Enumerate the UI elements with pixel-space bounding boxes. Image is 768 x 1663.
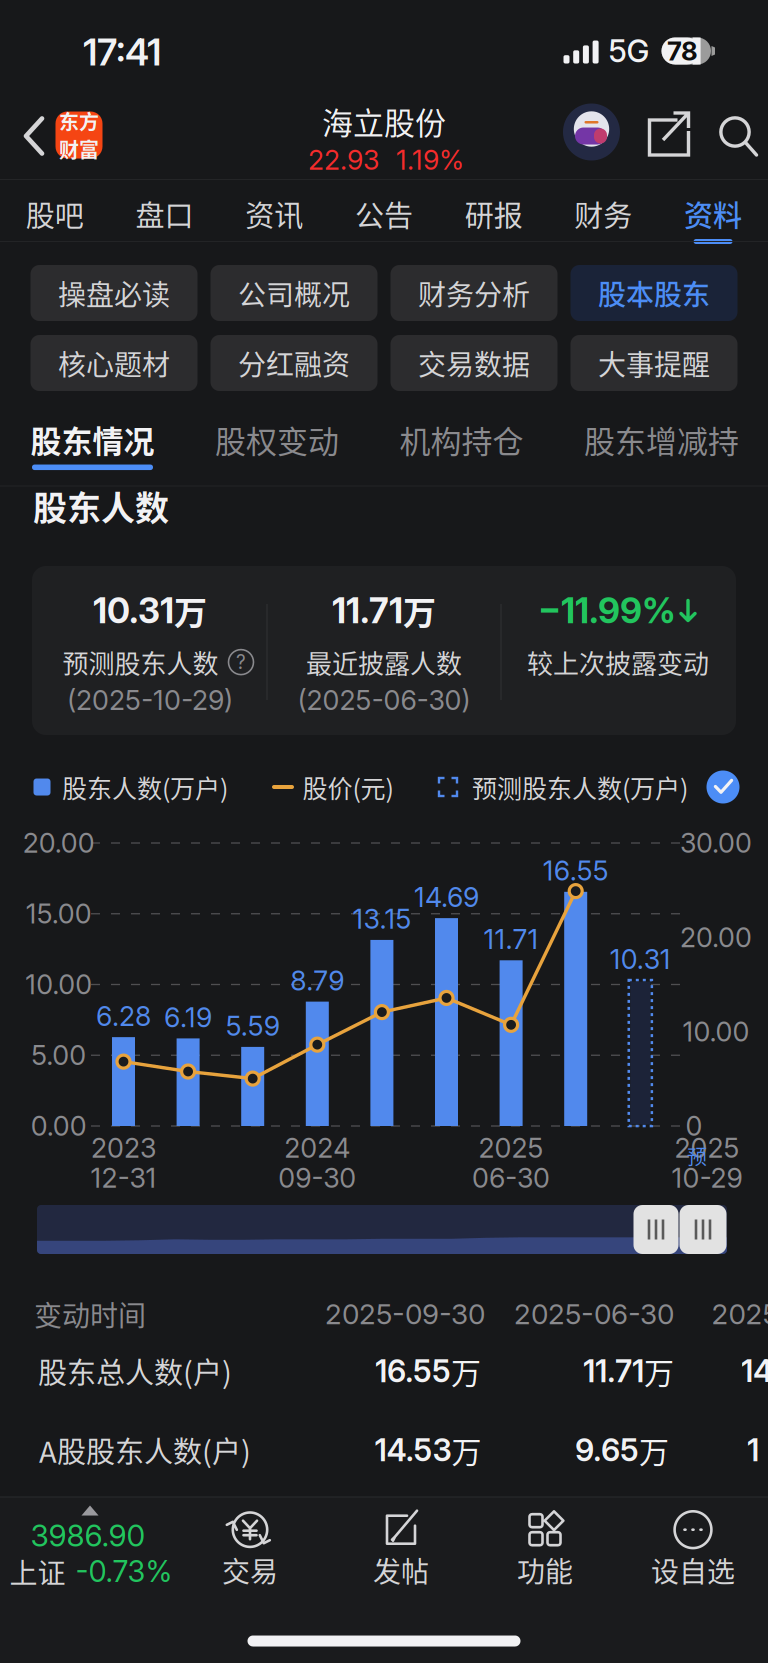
button[interactable]: 东方财富 [55, 111, 102, 158]
staticText: 万 [451, 1428, 481, 1472]
staticText: 6.28 [96, 1000, 151, 1032]
button[interactable]: 股东增减持 [561, 418, 761, 482]
button[interactable]: 操盘必读 [30, 265, 197, 321]
button[interactable]: 研报 [439, 180, 548, 242]
staticText: 14 [741, 1352, 768, 1390]
staticText: 2025-06-30 [514, 1297, 674, 1331]
staticText: 16.55 [543, 854, 609, 887]
staticText: 股价(元) [302, 769, 393, 805]
staticText: 1.19% [396, 144, 464, 176]
staticText: 11.71 [583, 1352, 644, 1390]
staticText: 10.00 [25, 968, 92, 1001]
staticText: 17:41 [83, 30, 161, 74]
button[interactable]: 机构持仓 [361, 418, 561, 482]
staticText: 10-29 [671, 1162, 742, 1194]
staticText: A股股东人数(户) [39, 1429, 251, 1471]
button[interactable]: 财务 [548, 180, 658, 242]
button[interactable]: 股权变动 [177, 418, 377, 482]
staticText: 16.55 [375, 1352, 451, 1390]
staticText: 交易 [222, 1550, 278, 1590]
staticText: 最近披露人数 [306, 643, 462, 681]
button[interactable]: 交易 [185, 1494, 315, 1598]
staticText: 股东增减持 [584, 417, 739, 462]
staticText: 设自选 [651, 1550, 735, 1590]
staticText: 股东人数(万户) [62, 769, 228, 805]
staticText: 分红融资 [238, 343, 350, 383]
button[interactable]: 股东情况 [0, 418, 192, 482]
staticText: 5.00 [31, 1039, 86, 1072]
staticText: 10.31 [93, 589, 174, 632]
staticText: 2024 [284, 1132, 350, 1164]
button[interactable]: 股本股东 [570, 265, 737, 321]
staticText: 上证 [9, 1551, 65, 1592]
staticText: 13.15 [352, 903, 411, 935]
button[interactable]: 资料 [658, 180, 768, 242]
button[interactable]: Share [639, 103, 698, 165]
staticText: 5G [608, 32, 649, 70]
staticText: 0.00 [31, 1110, 87, 1142]
staticText: 财务分析 [418, 273, 530, 313]
button[interactable]: Back [4, 105, 58, 167]
button[interactable]: 公司概况 [210, 265, 377, 321]
staticText: 22.93 [308, 144, 379, 176]
staticText: 预测股东人数 [62, 643, 218, 681]
staticText: 万 [451, 1349, 481, 1393]
staticText: 30.00 [680, 827, 752, 859]
staticText: 3986.90 [30, 1517, 145, 1554]
staticText: 2023 [91, 1132, 156, 1164]
staticText: 10.00 [682, 1015, 749, 1048]
staticText: 机构持仓 [399, 417, 523, 462]
staticText: 核心题材 [58, 343, 170, 383]
staticText: ? [236, 651, 246, 673]
staticText: 股吧 [26, 193, 84, 235]
staticText: 股东人数 [33, 481, 169, 531]
button[interactable]: 资讯 [219, 180, 329, 242]
button[interactable]: 核心题材 [30, 335, 197, 391]
button[interactable]: Adjust range [679, 1205, 726, 1254]
button[interactable]: 公告 [329, 180, 439, 242]
staticText: (2025-06-30) [297, 684, 470, 717]
staticText: 06-30 [472, 1162, 550, 1194]
staticText: 股东情况 [30, 417, 154, 462]
button[interactable]: 分红融资 [210, 335, 377, 391]
button[interactable]: 发帖 [336, 1494, 466, 1598]
staticText: 功能 [517, 1550, 573, 1590]
staticText: 2025-09-30 [325, 1297, 485, 1331]
staticText: 0 [685, 1110, 702, 1142]
staticText: 11.71 [332, 589, 403, 632]
staticText: 盘口 [136, 193, 194, 235]
staticText: 万 [403, 587, 436, 634]
staticText: 股权变动 [215, 417, 339, 462]
button[interactable]: 上证 index [0, 1494, 190, 1599]
staticText: 预 [687, 1141, 707, 1170]
button[interactable]: 股吧 [0, 180, 110, 242]
staticText: 万 [644, 1349, 674, 1393]
button[interactable]: 交易数据 [390, 335, 557, 391]
staticText: 公告 [355, 193, 413, 235]
button[interactable]: 财务分析 [390, 265, 557, 321]
staticText: 2025 [674, 1132, 739, 1164]
button[interactable]: 设自选 [628, 1494, 758, 1598]
button[interactable]: 盘口 [110, 180, 219, 242]
staticText: −11.99% [538, 589, 676, 632]
staticText: 发帖 [373, 1550, 429, 1590]
staticText: 海立股份 [322, 99, 446, 143]
staticText: -0.73% [75, 1554, 172, 1589]
button[interactable]: 大事提醒 [570, 335, 737, 391]
button[interactable]: Toggle forecast series [706, 770, 739, 803]
button[interactable]: AI assistant [563, 103, 620, 160]
staticText: 14.53 [374, 1431, 451, 1469]
staticText: 10.31 [610, 943, 671, 975]
staticText: 5.59 [226, 1010, 280, 1042]
button[interactable]: Search [707, 105, 766, 165]
staticText: 东方 [59, 106, 99, 135]
staticText: 15.00 [26, 897, 92, 930]
button[interactable]: 功能 [480, 1494, 610, 1598]
staticText: 财务 [574, 193, 632, 235]
staticText: 万 [639, 1428, 669, 1472]
staticText: 研报 [465, 193, 523, 235]
staticText: 操盘必读 [58, 273, 170, 313]
staticText: 14.69 [414, 881, 479, 913]
button[interactable]: Adjust range [633, 1205, 678, 1254]
staticText: 20.00 [23, 827, 95, 859]
